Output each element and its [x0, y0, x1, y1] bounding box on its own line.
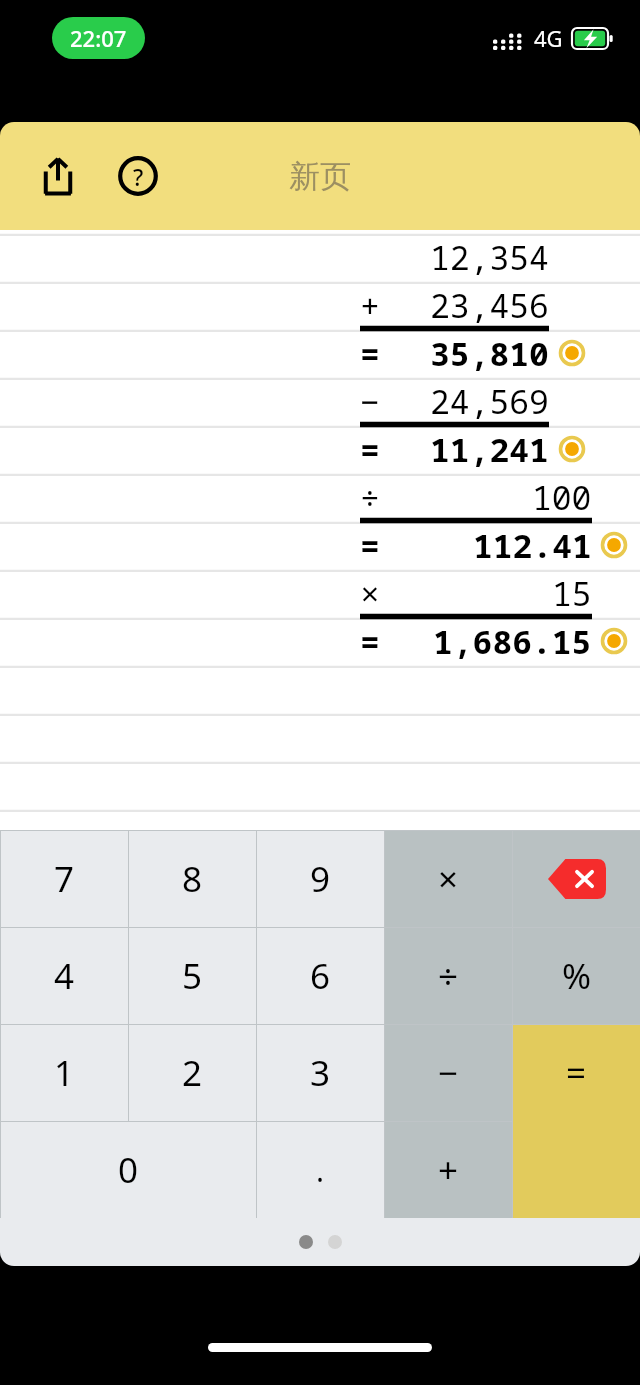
button[interactable]: Share — [28, 146, 88, 206]
button[interactable]: ÷ — [385, 928, 512, 1024]
button[interactable]: + — [385, 1122, 512, 1218]
staticText: % — [562, 952, 592, 1000]
staticText: 24,569 — [430, 379, 549, 422]
staticText: 12,354 — [430, 235, 549, 278]
button[interactable]: 8 — [129, 831, 256, 927]
button[interactable]: Result marker — [598, 625, 630, 657]
button[interactable]: 6 — [257, 928, 384, 1024]
staticText: 11,241 — [430, 427, 549, 470]
staticText: ÷ — [438, 952, 459, 1000]
staticText: 5 — [182, 952, 203, 1000]
button[interactable]: . — [257, 1122, 384, 1218]
button[interactable]: = — [513, 1025, 640, 1121]
staticText: × — [438, 855, 459, 903]
staticText: = — [360, 331, 380, 374]
button[interactable]: Result marker — [556, 433, 588, 465]
staticText: + — [360, 283, 380, 326]
staticText: 6 — [310, 952, 331, 1000]
staticText: 2 — [182, 1049, 203, 1097]
staticText: 1,686.15 — [433, 619, 592, 662]
staticText: + — [438, 1146, 459, 1194]
staticText: = — [360, 427, 380, 470]
button[interactable]: 7 — [1, 831, 128, 927]
staticText: 1 — [54, 1049, 75, 1097]
staticText: ÷ — [360, 475, 380, 518]
button[interactable]: 0 — [1, 1122, 256, 1218]
staticText: 4G — [534, 23, 563, 53]
staticText: × — [360, 571, 380, 614]
button[interactable]: 1 — [1, 1025, 128, 1121]
button[interactable]: × — [385, 831, 512, 927]
staticText: 35,810 — [430, 331, 549, 374]
staticText: 22:07 — [70, 23, 127, 53]
staticText: 7 — [54, 855, 75, 903]
staticText: 23,456 — [430, 283, 549, 326]
staticText: 15 — [552, 571, 592, 614]
button[interactable]: % — [513, 928, 640, 1024]
button[interactable]: 2 — [129, 1025, 256, 1121]
staticText: − — [438, 1049, 459, 1097]
button[interactable]: 5 — [129, 928, 256, 1024]
button[interactable]: − — [385, 1025, 512, 1121]
staticText: − — [360, 379, 380, 422]
button[interactable]: 4 — [1, 928, 128, 1024]
button[interactable]: 3 — [257, 1025, 384, 1121]
button[interactable]: 9 — [257, 831, 384, 927]
staticText: = — [360, 523, 380, 566]
button[interactable]: Result marker — [556, 337, 588, 369]
staticText: 9 — [310, 855, 331, 903]
button[interactable]: Delete — [513, 831, 640, 927]
staticText: 4 — [54, 952, 75, 1000]
staticText: ? — [133, 161, 144, 192]
button[interactable]: Result marker — [598, 529, 630, 561]
staticText: 8 — [182, 855, 203, 903]
staticText: 新页 — [289, 157, 351, 196]
staticText: 112.41 — [473, 523, 592, 566]
staticText: . — [316, 1150, 325, 1191]
staticText: 0 — [118, 1146, 139, 1194]
button[interactable]: Help — [108, 146, 168, 206]
staticText: 3 — [310, 1049, 331, 1097]
staticText: = — [360, 619, 380, 662]
staticText: 100 — [532, 475, 592, 518]
staticText: = — [566, 1049, 587, 1097]
